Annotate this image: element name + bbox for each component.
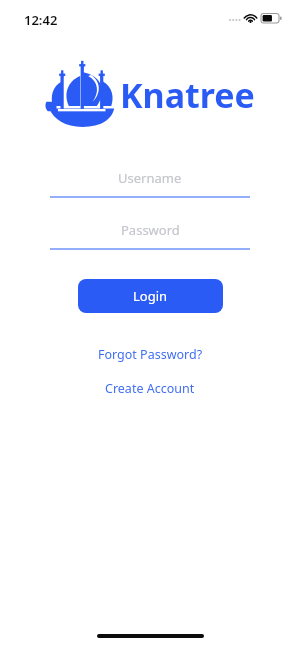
staticText: 12:42 — [24, 11, 58, 29]
staticText: Username — [118, 169, 182, 187]
button[interactable]: Password — [50, 218, 250, 250]
button[interactable]: Login — [78, 279, 223, 313]
button[interactable]: Username — [50, 166, 250, 198]
button[interactable]: Forgot Password? — [88, 342, 213, 367]
staticText: Create Account — [105, 380, 195, 397]
staticText: Forgot Password? — [98, 346, 203, 363]
staticText: Login — [133, 287, 168, 305]
staticText: Password — [121, 221, 180, 239]
button[interactable]: Create Account — [95, 376, 205, 401]
staticText: Knatree — [120, 72, 255, 118]
